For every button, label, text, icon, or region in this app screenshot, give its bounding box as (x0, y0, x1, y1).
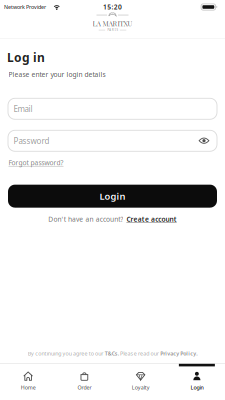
button[interactable]: Login (8, 185, 217, 208)
staticText: Home (21, 384, 36, 391)
staticText: By continuing you agree to our (28, 350, 103, 357)
staticText: Password (13, 135, 49, 146)
staticText: Login (190, 384, 203, 391)
staticText: T&Cs. (105, 350, 119, 357)
staticText: Please read our (120, 350, 159, 357)
button[interactable]: Email (8, 98, 217, 119)
staticText: Don't have an account? (48, 215, 123, 223)
staticText: Network Provider (4, 3, 46, 11)
staticText: Forgot password? (8, 158, 63, 167)
staticText: Privacy Policy. (160, 350, 197, 357)
staticText: Login (99, 190, 125, 202)
button[interactable]: Privacy Policy. (160, 350, 197, 357)
button[interactable]: Login (169, 364, 225, 400)
staticText: Create account (126, 215, 177, 223)
staticText: 15:20 (103, 3, 122, 11)
button[interactable]: Forgot password? (0, 158, 63, 167)
button[interactable]: Order (56, 364, 112, 400)
staticText: Please enter your login details (8, 70, 105, 79)
button[interactable]: Create account (126, 215, 177, 223)
button[interactable]: T&Cs. (105, 350, 119, 357)
staticText: PARIS (107, 28, 118, 32)
staticText: Loyalty (132, 384, 150, 391)
staticText: LA MARITXU (92, 18, 132, 28)
button[interactable]: Loyalty (112, 364, 169, 400)
button[interactable]: Password (8, 130, 217, 151)
staticText: Email (13, 103, 32, 114)
staticText: Log in (7, 49, 45, 65)
button[interactable]: Show password (198, 137, 217, 144)
button[interactable]: Home (0, 364, 56, 400)
staticText: Order (77, 384, 91, 391)
